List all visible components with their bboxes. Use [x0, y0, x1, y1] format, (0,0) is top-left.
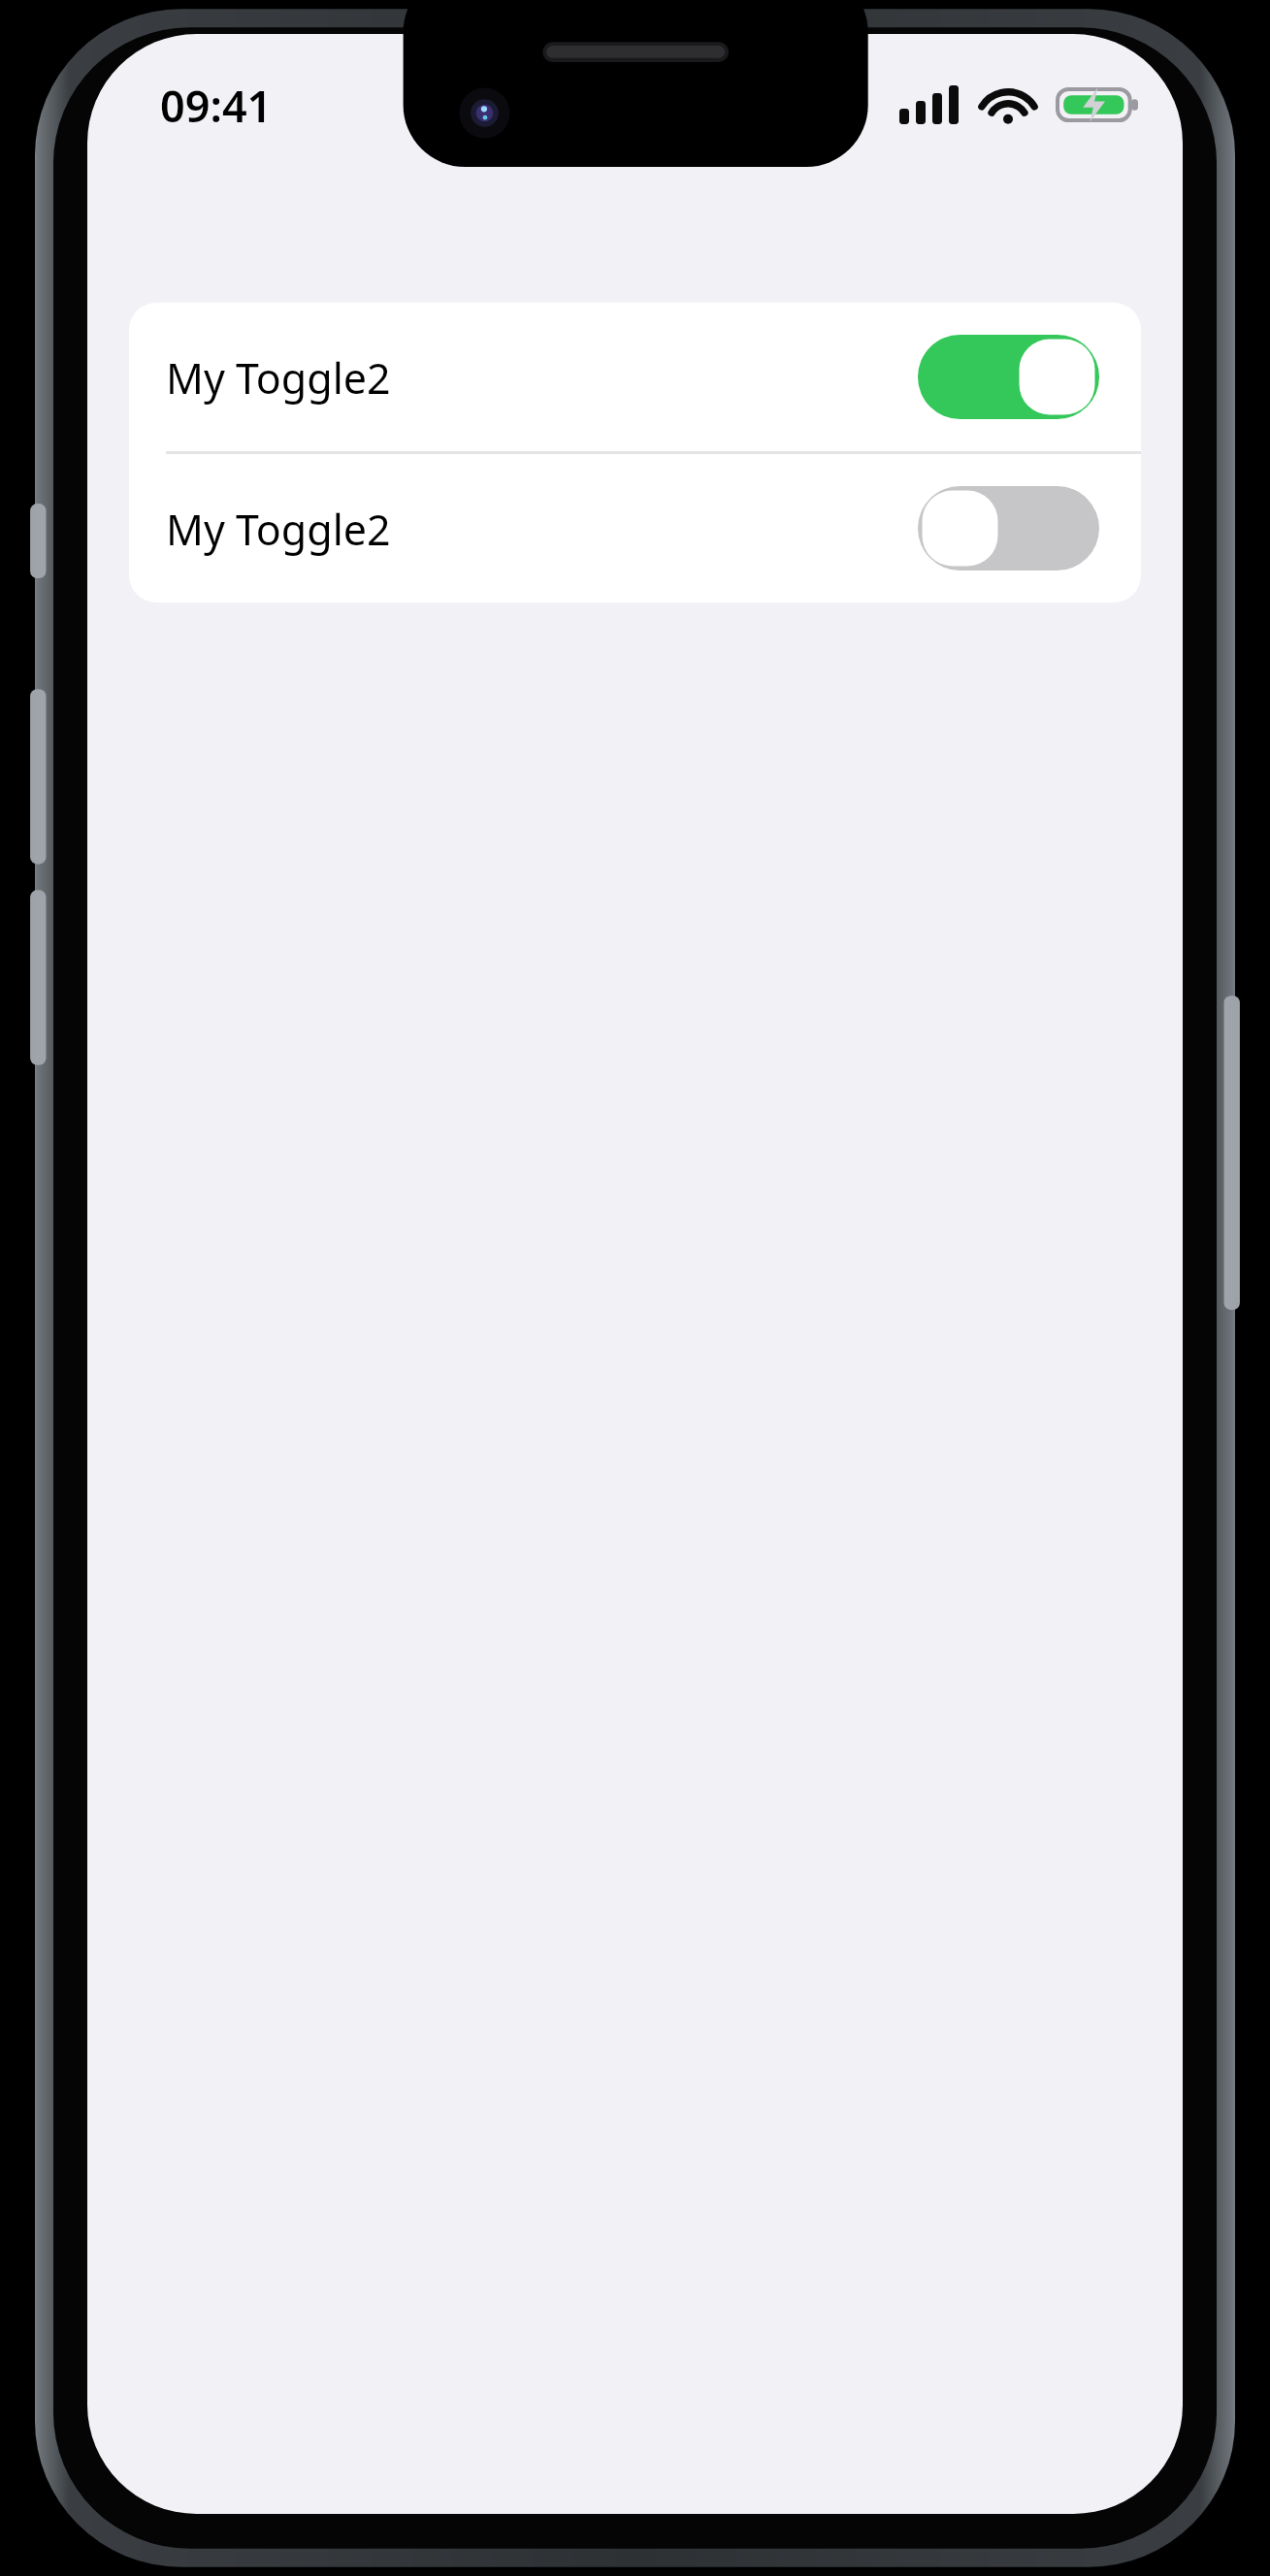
staticText: My Toggle2: [166, 349, 391, 406]
button[interactable]: My Toggle2: [129, 303, 1141, 451]
staticText: 09:41: [160, 76, 273, 135]
button[interactable]: My Toggle2: [129, 454, 1141, 603]
button[interactable]: Toggle on: [918, 335, 1099, 419]
button[interactable]: Toggle off: [918, 486, 1099, 571]
staticText: My Toggle2: [166, 501, 391, 557]
